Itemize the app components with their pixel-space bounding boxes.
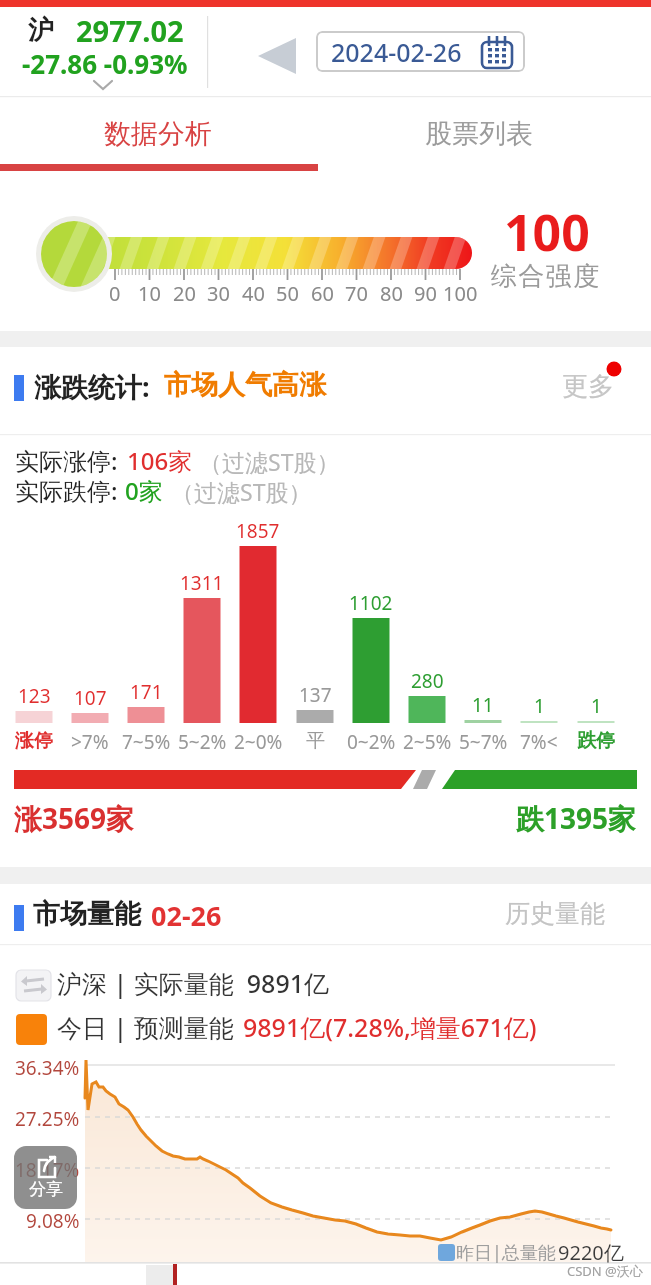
staticText: 5~2%: [178, 729, 227, 755]
staticText: 20: [173, 280, 196, 307]
staticText: 18.17%: [15, 1157, 80, 1183]
staticText: 27.25%: [15, 1106, 80, 1132]
staticText: 2024-02-26: [331, 35, 462, 69]
staticText: 市场量能: [33, 897, 141, 931]
staticText: 36.34%: [15, 1055, 80, 1081]
staticText: 5~7%: [459, 729, 508, 755]
staticText: 实际涨停:: [15, 444, 118, 477]
staticText: 0: [109, 280, 121, 307]
staticText: 昨日|总量能: [456, 1240, 556, 1265]
button[interactable]: 股票列表: [351, 104, 606, 164]
staticText: 数据分析: [104, 117, 212, 151]
staticText: 涨停: [15, 729, 53, 753]
button[interactable]: [252, 32, 302, 78]
staticText: 跌1395家: [516, 799, 637, 837]
staticText: 分享: [29, 1179, 63, 1200]
staticText: 9220亿: [558, 1239, 624, 1266]
staticText: 1: [591, 693, 602, 719]
button[interactable]: 历史量能: [495, 895, 635, 935]
staticText: 涨跌统计:: [34, 368, 150, 405]
staticText: 1102: [349, 590, 393, 616]
staticText: 02-26: [151, 897, 222, 934]
staticText: 60: [311, 280, 334, 307]
staticText: -27.86 -0.93%: [22, 46, 188, 81]
staticText: 综合强度: [490, 260, 600, 293]
staticText: 0~2%: [347, 729, 396, 755]
staticText: 1311: [180, 570, 224, 596]
staticText: 106家: [127, 444, 193, 477]
staticText: （过滤ST股）: [171, 476, 312, 507]
staticText: 123: [18, 683, 51, 709]
staticText: 跌停: [577, 729, 615, 753]
button[interactable]: 更多: [556, 362, 626, 404]
staticText: 137: [299, 682, 332, 708]
staticText: 10: [138, 280, 161, 307]
staticText: 1: [534, 693, 545, 719]
staticText: 9891亿(7.28%,增量671亿): [243, 1010, 537, 1044]
button[interactable]: 分享: [14, 1146, 77, 1209]
staticText: 171: [130, 679, 163, 705]
button[interactable]: 数据分析: [0, 104, 315, 164]
staticText: 0家: [125, 474, 163, 507]
staticText: 1857: [236, 518, 280, 544]
button[interactable]: 2024-02-26: [316, 31, 525, 72]
staticText: 股票列表: [425, 117, 533, 151]
staticText: 70: [345, 280, 368, 307]
staticText: 今日 | 预测量能: [57, 1010, 234, 1044]
staticText: 历史量能: [505, 898, 605, 929]
staticText: CSDN @沃心: [567, 1262, 643, 1280]
staticText: 平: [306, 729, 325, 753]
staticText: 280: [411, 668, 444, 694]
staticText: 90: [414, 280, 437, 307]
staticText: 80: [380, 280, 403, 307]
staticText: 2~5%: [403, 729, 452, 755]
staticText: 9.08%: [26, 1208, 80, 1234]
staticText: 2~0%: [234, 729, 283, 755]
staticText: 11: [472, 692, 494, 718]
staticText: 100: [504, 198, 590, 266]
staticText: （过滤ST股）: [199, 446, 340, 477]
staticText: 实际跌停:: [15, 474, 118, 507]
staticText: 沪: [28, 14, 54, 47]
staticText: 7%<: [520, 729, 558, 755]
staticText: 市场人气高涨: [164, 368, 326, 402]
staticText: 7~5%: [122, 729, 171, 755]
staticText: 107: [74, 685, 107, 711]
staticText: 100: [443, 280, 478, 307]
staticText: 更多: [562, 370, 614, 403]
staticText: >7%: [71, 729, 109, 755]
staticText: 涨3569家: [14, 799, 135, 837]
staticText: 50: [276, 280, 299, 307]
staticText: 沪深 | 实际量能 9891亿: [57, 966, 329, 1000]
staticText: 30: [207, 280, 230, 307]
staticText: 40: [242, 280, 265, 307]
staticText: 2977.02: [76, 11, 184, 50]
